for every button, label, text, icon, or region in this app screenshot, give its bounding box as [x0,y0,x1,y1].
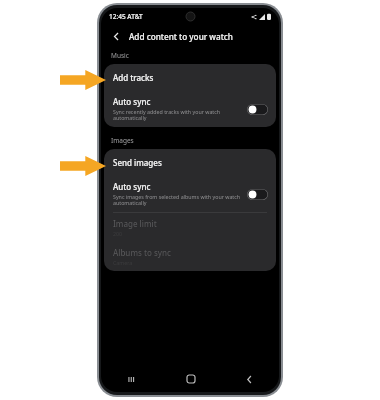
staticText: Camera [113,259,133,266]
button[interactable]: Albums to sync [104,242,276,271]
button[interactable]: Auto sync toggle [247,104,268,115]
staticText: Sync images from selected albums with yo… [113,193,241,207]
button[interactable]: Auto sync [104,91,276,127]
staticText: Albums to sync [113,247,172,258]
button[interactable]: Image limit [104,213,276,242]
button[interactable]: Send images [104,149,276,176]
staticText: Auto sync [113,96,151,107]
button[interactable]: Home [161,366,220,392]
staticText: 12:45 AT&T [109,12,143,21]
staticText: Music [111,51,129,60]
button[interactable]: Back [220,366,279,392]
button[interactable]: Recents [101,366,161,392]
button[interactable]: Auto sync toggle [247,189,268,200]
staticText: 200 [113,230,123,237]
staticText: Add tracks [113,72,154,83]
button[interactable]: Add tracks [104,64,276,91]
staticText: Send images [113,157,162,168]
staticText: Auto sync [113,181,151,192]
staticText: Image limit [113,218,157,229]
staticText: Add content to your watch [129,31,233,42]
button[interactable]: Auto sync [104,176,276,212]
staticText: Images [111,136,134,145]
staticText: Sync recently added tracks with your wat… [113,108,241,122]
button[interactable]: Back [108,28,124,44]
